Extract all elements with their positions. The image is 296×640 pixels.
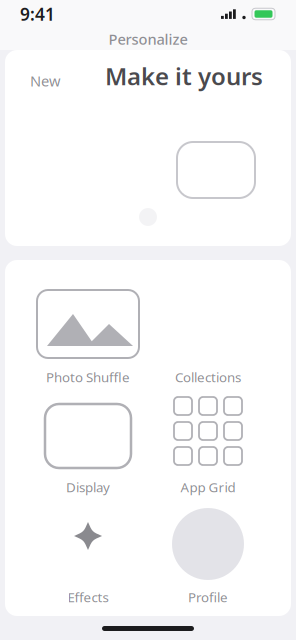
staticText: Effects — [67, 588, 108, 606]
staticText: New — [30, 71, 61, 90]
staticText: Personalize — [108, 29, 187, 49]
button[interactable]: Photo Shuffle — [28, 286, 148, 396]
staticText: Collections — [175, 368, 241, 386]
button[interactable]: Collections — [148, 286, 268, 396]
staticText: App Grid — [180, 478, 235, 496]
button[interactable]: Effects — [28, 506, 148, 616]
button[interactable]: Display — [28, 396, 148, 506]
staticText: Photo Shuffle — [46, 368, 130, 386]
button[interactable]: Profile — [148, 506, 268, 616]
button[interactable]: App Grid — [148, 396, 268, 506]
staticText: Display — [66, 478, 110, 496]
staticText: Make it yours — [105, 60, 263, 92]
staticText: 9:41 — [20, 2, 55, 25]
staticText: Profile — [188, 588, 228, 606]
